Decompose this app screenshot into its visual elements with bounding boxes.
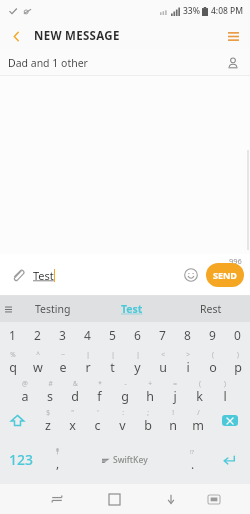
staticText: e [59,359,67,376]
button[interactable]: !? [178,435,207,484]
staticText: 33% [183,5,200,17]
staticText: ! [172,408,174,417]
button[interactable]: Test [33,268,178,283]
button[interactable]: > [175,348,200,377]
button[interactable]: Emoji [178,262,204,288]
button[interactable]: | [125,348,150,377]
staticText: | [136,350,140,359]
button[interactable]: < [150,348,175,377]
button[interactable]: : [110,406,135,435]
staticText: ~ [61,350,65,359]
staticText: d [71,388,79,405]
staticText: Testing [35,302,71,316]
button[interactable]: ~ [50,348,75,377]
staticText: + [148,379,152,388]
staticText: 4:08 PM [211,5,244,17]
button[interactable]: Testing [14,296,92,322]
staticText: * [98,379,102,388]
button[interactable]: ( [200,348,225,377]
button[interactable]: % [0,348,25,377]
button[interactable]: 8 [175,322,200,348]
staticText: & [73,379,78,388]
staticText: t [110,359,115,376]
staticText: SwiftKey [113,454,148,466]
staticText: | [111,350,115,359]
button[interactable]: | [100,348,125,377]
staticText: 3 [59,327,66,343]
staticText: !? [190,448,195,456]
button[interactable]: Test [92,296,171,322]
button[interactable]: Add recipient [222,52,244,74]
staticText: b [144,417,152,434]
button[interactable]: $ [35,406,60,435]
button[interactable]: 6 [125,322,150,348]
button[interactable]: - [112,377,137,406]
button[interactable]: + [137,377,162,406]
staticText: k [196,388,203,405]
staticText: l [223,388,227,405]
button[interactable]: Home [96,484,132,514]
button[interactable]: Attach [6,263,30,287]
button[interactable]: 123 [0,435,43,484]
staticText: : [122,408,124,417]
button[interactable]: 2 [25,322,50,348]
button[interactable]: 7 [150,322,175,348]
button[interactable]: Shift [0,406,35,435]
button[interactable]: Hide keyboard [153,484,189,514]
button[interactable]: & [62,377,87,406]
staticText: g [121,388,129,405]
button[interactable]: Switch keyboard [196,484,232,514]
button[interactable]: # [37,377,62,406]
staticText: ) [224,379,226,388]
button[interactable]: " [60,406,85,435]
button[interactable]: 9 [200,322,225,348]
button[interactable]: More options [220,23,246,49]
button[interactable]: 1 [0,322,25,348]
button[interactable]: ) [225,348,250,377]
button[interactable]: ! [160,406,185,435]
staticText: 0 [234,327,241,343]
button[interactable]: 3 [50,322,75,348]
staticText: 5 [109,327,116,343]
staticText: w [33,359,43,376]
staticText: ' [97,408,99,417]
button[interactable]: Backspace [210,406,250,435]
button[interactable]: Rest [171,296,250,322]
button[interactable]: Back [4,24,28,48]
staticText: ; [147,408,149,417]
staticText: n [169,417,177,434]
button[interactable]: * [87,377,112,406]
button[interactable]: 4 [75,322,100,348]
button[interactable]: Keyboard menu [1,302,15,316]
staticText: a [21,388,29,405]
button[interactable]: ; [135,406,160,435]
button[interactable]: Enter [207,435,250,484]
staticText: c [94,417,101,434]
button[interactable]: Dad and 1 other [0,49,250,76]
staticText: q [9,359,17,376]
button[interactable]: Comma and voice input [43,435,72,484]
button[interactable]: SEND [206,263,244,287]
button[interactable]: / [185,406,210,435]
staticText: 9 [209,327,216,343]
button[interactable]: ' [85,406,110,435]
staticText: i [186,359,190,376]
staticText: Test [121,302,143,316]
button[interactable]: @ [12,377,37,406]
button[interactable]: Recents [39,484,75,514]
staticText: NEW MESSAGE [34,28,120,44]
staticText: % [10,350,16,359]
button[interactable]: SwiftKey [72,435,178,484]
staticText: Dad and 1 other [8,56,88,70]
staticText: 2 [34,327,41,343]
button[interactable]: ) [212,377,237,406]
button[interactable]: ( [187,377,212,406]
button[interactable]: ^ [25,348,50,377]
staticText: v [119,417,126,434]
staticText: y [134,359,141,376]
button[interactable]: 5 [100,322,125,348]
staticText: < [161,350,165,359]
button[interactable]: | [75,348,100,377]
button[interactable]: = [162,377,187,406]
button[interactable]: 0 [225,322,250,348]
